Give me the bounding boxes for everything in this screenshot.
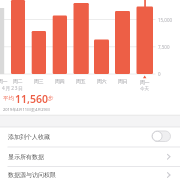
staticText: 显示所有数据 bbox=[8, 153, 44, 161]
staticText: 7,500 bbox=[158, 44, 170, 50]
staticText: 0 bbox=[158, 71, 161, 77]
staticText: 平均 bbox=[3, 95, 14, 102]
button[interactable]: 显示所有数据 bbox=[0, 147, 180, 167]
staticText: 周二 bbox=[13, 78, 23, 84]
staticText: 11,560 bbox=[15, 92, 48, 106]
staticText: 2019年4月11日至4月29日 bbox=[3, 107, 50, 112]
staticText: 周五 bbox=[76, 78, 86, 84]
staticText: 今天 bbox=[140, 86, 149, 92]
staticText: 添加到个人收藏 bbox=[8, 133, 50, 141]
button[interactable]: 添加到个人收藏 bbox=[0, 127, 180, 147]
staticText: 周一 bbox=[140, 79, 150, 85]
staticText: 周六 bbox=[97, 78, 107, 84]
staticText: 步 bbox=[48, 95, 54, 102]
staticText: 周四 bbox=[55, 78, 65, 84]
staticText: 4月23日 bbox=[2, 85, 24, 91]
staticText: 周一 bbox=[0, 78, 8, 84]
button[interactable]: 数据源与访问权限 bbox=[0, 167, 180, 180]
staticText: 数据源与访问权限 bbox=[8, 171, 56, 179]
staticText: 周三 bbox=[34, 78, 44, 84]
staticText: 周日 bbox=[118, 78, 128, 84]
staticText: 15,000 bbox=[158, 17, 173, 23]
